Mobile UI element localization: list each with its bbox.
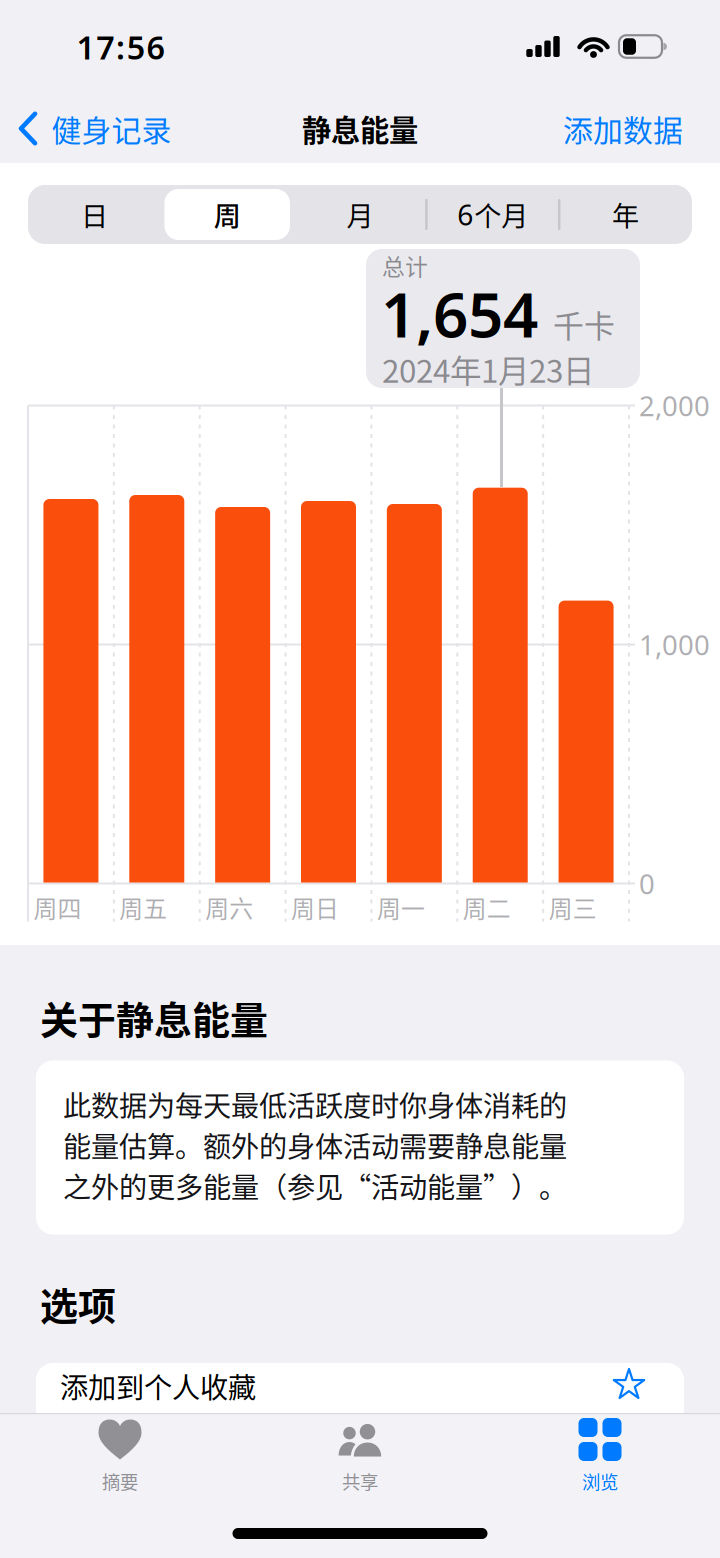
staticText: 此数据为每天最低活跃度时你身体消耗的 能量估算。额外的身体活动需要静息能量 之外… [63, 1084, 567, 1206]
button[interactable]: 6 [427, 185, 559, 243]
staticText: 周 [214, 195, 241, 234]
staticText: 添加数据 [563, 107, 683, 150]
staticText: 年 [612, 195, 639, 234]
button[interactable]: 月 [294, 185, 426, 243]
staticText: 总计 [382, 249, 428, 282]
staticText: 17:56 [76, 25, 165, 69]
button[interactable]: 周 [161, 185, 293, 243]
staticText: 添加到个人收藏 [60, 1366, 256, 1406]
staticText: 关于静息能量 [40, 990, 268, 1045]
button[interactable]: 添加到个人收藏 [36, 1363, 684, 1459]
staticText: 周二 [463, 890, 511, 924]
staticText: 周一 [377, 890, 425, 924]
staticText: 周日 [291, 890, 339, 924]
staticText: 1,654 [381, 271, 538, 356]
staticText: 摘要 [102, 1468, 138, 1494]
button[interactable]: 共享 [240, 1409, 480, 1509]
staticText: 周五 [119, 890, 167, 924]
staticText: 月 [346, 195, 373, 234]
button[interactable]: 添加数据 [563, 107, 683, 150]
staticText: 周四 [33, 890, 81, 924]
staticText: 千卡 [553, 302, 615, 346]
staticText: 个月 [474, 195, 528, 234]
staticText: 静息能量 [302, 107, 418, 150]
staticText: 0 [639, 865, 655, 902]
button[interactable]: 浏览 [480, 1409, 720, 1509]
staticText: 健身记录 [51, 107, 171, 150]
staticText: 1,000 [639, 626, 710, 663]
staticText: 6 [457, 195, 473, 234]
button[interactable]: 年 [560, 185, 692, 243]
staticText: 日 [81, 195, 108, 234]
staticText: 选项 [40, 1276, 116, 1331]
staticText: 2024年1月23日 [382, 346, 594, 392]
staticText: 共享 [342, 1468, 378, 1494]
button[interactable]: 健身记录 [18, 107, 171, 150]
staticText: 浏览 [582, 1468, 618, 1494]
button[interactable]: 日 [28, 185, 160, 243]
staticText: 2,000 [639, 387, 710, 424]
button[interactable]: 摘要 [0, 1409, 240, 1509]
staticText: 周三 [549, 890, 597, 924]
staticText: 周六 [205, 890, 253, 924]
